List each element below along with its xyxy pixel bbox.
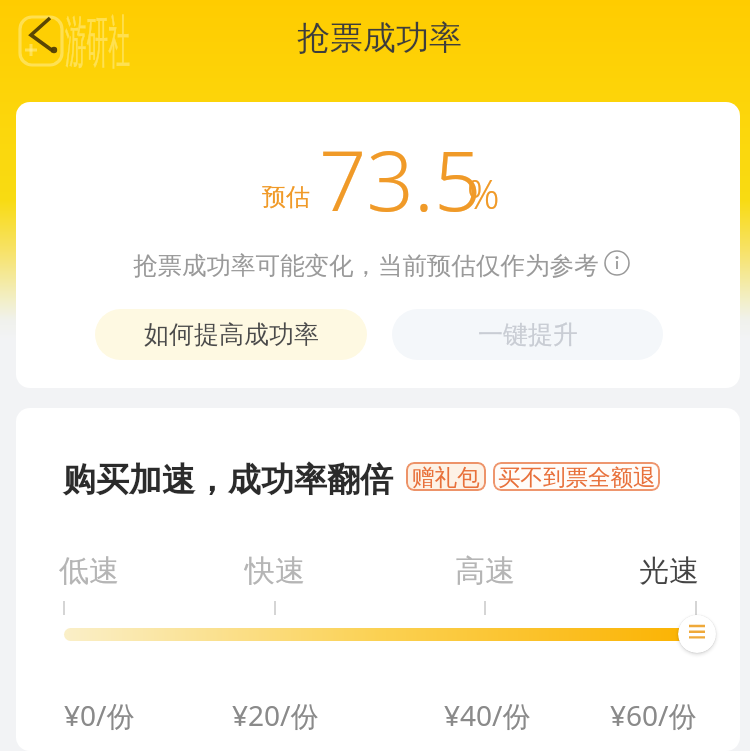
button[interactable]: 成功率说明 <box>604 250 630 276</box>
staticText: 一键提升 <box>478 319 578 350</box>
button[interactable]: 光速 <box>639 552 699 590</box>
button[interactable]: 高速 <box>455 552 515 590</box>
staticText: 抢票成功率 <box>297 17 462 59</box>
staticText: ¥40/份 <box>444 696 531 734</box>
button[interactable]: ¥20/份 <box>232 696 319 734</box>
button[interactable]: 一键提升 <box>392 309 663 360</box>
staticText: 抢票成功率可能变化，当前预估仅作为参考 <box>133 250 599 281</box>
button[interactable]: 低速 <box>59 552 119 590</box>
button[interactable]: 如何提高成功率 <box>95 309 367 360</box>
staticText: ¥0/份 <box>64 696 135 734</box>
staticText: 买不到票全额退 <box>498 463 656 491</box>
button[interactable]: 快速 <box>245 552 305 590</box>
button[interactable]: ¥60/份 <box>610 696 697 734</box>
button[interactable]: 速度滑块 <box>678 615 716 653</box>
staticText: 高速 <box>455 552 515 590</box>
staticText: 游研社 <box>65 7 130 77</box>
button[interactable]: ¥40/份 <box>444 696 531 734</box>
button[interactable]: 买不到票全额退 <box>493 462 660 491</box>
button[interactable]: 赠礼包 <box>406 462 486 491</box>
button[interactable]: ¥0/份 <box>64 696 135 734</box>
staticText: 快速 <box>245 552 305 590</box>
staticText: 73.5 <box>319 122 482 235</box>
staticText: 如何提高成功率 <box>144 319 319 350</box>
staticText: % <box>467 166 500 220</box>
staticText: 购买加速，成功率翻倍 <box>63 459 393 501</box>
staticText: ¥20/份 <box>232 696 319 734</box>
staticText: ¥60/份 <box>610 696 697 734</box>
staticText: 预估 <box>262 182 310 212</box>
staticText: 赠礼包 <box>412 463 480 491</box>
staticText: 光速 <box>639 552 699 590</box>
staticText: 低速 <box>59 552 119 590</box>
